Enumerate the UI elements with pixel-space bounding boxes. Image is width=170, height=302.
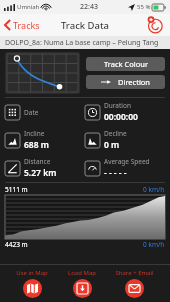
staticText: 0 km/h (143, 240, 165, 249)
button[interactable]: Date (5, 98, 85, 126)
staticText: 0 m (104, 139, 120, 151)
staticText: DOLPO_8a: Numa La base camp – Pelung Tan… (5, 38, 165, 48)
staticText: 0 km/h (143, 185, 165, 194)
staticText: Direction (118, 77, 151, 87)
button[interactable]: Use in Map (13, 268, 51, 299)
staticText: Incline (24, 129, 45, 138)
button[interactable]: Duration (85, 98, 165, 126)
staticText: 00:00:00 (104, 111, 138, 123)
staticText: 22:43 (80, 2, 98, 12)
button[interactable]: DOLPO_8a: Numa La base camp – Pelung Tan… (0, 36, 170, 49)
staticText: - - - - - (104, 167, 127, 179)
button[interactable]: Add track (146, 16, 164, 34)
staticText: Decline (104, 129, 127, 138)
staticText: Distance (24, 157, 51, 166)
staticText: Use in Map (16, 269, 48, 277)
button[interactable]: Average Speed (85, 154, 165, 182)
staticText: Share + Email (115, 269, 154, 277)
staticText: 5.27 km (24, 167, 57, 179)
button[interactable]: Tracks (3, 17, 42, 33)
staticText: Date (24, 108, 39, 117)
button[interactable]: Decline (85, 126, 165, 154)
button[interactable]: Elevation profile (5, 195, 165, 239)
button[interactable]: Track map preview (5, 52, 80, 94)
button[interactable]: Track Colour (86, 57, 165, 71)
staticText: Tracks (13, 19, 40, 31)
staticText: Umniah (17, 3, 40, 11)
staticText: Average Speed (104, 157, 150, 166)
staticText: Duration (104, 101, 131, 110)
staticText: 55 % (137, 3, 151, 11)
button[interactable]: Share + Email (112, 268, 157, 299)
staticText: Track Data (61, 19, 110, 32)
staticText: 688 m (24, 139, 49, 151)
staticText: 4423 m (5, 240, 28, 249)
staticText: Track Colour (104, 59, 148, 69)
button[interactable]: Load Map (65, 268, 99, 299)
button[interactable]: Incline (5, 126, 85, 154)
button[interactable]: Direction (86, 75, 165, 89)
staticText: 5111 m (5, 185, 28, 194)
staticText: Load Map (68, 269, 96, 277)
button[interactable]: Distance (5, 154, 85, 182)
